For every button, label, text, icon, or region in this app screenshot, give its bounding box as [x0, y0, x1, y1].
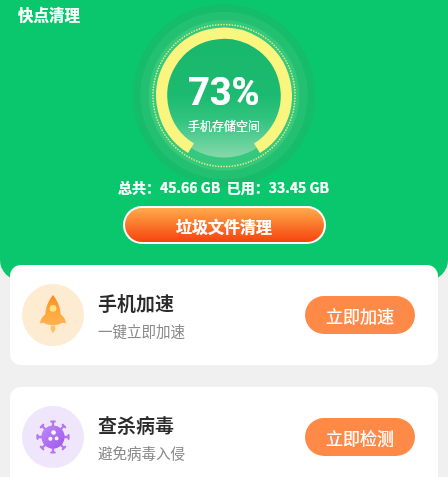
staticText: 总共：45.66 GB 已用：33.45 GB — [118, 177, 330, 197]
staticText: 一键立即加速 — [98, 320, 185, 341]
button[interactable]: 查杀病毒 — [10, 387, 438, 477]
staticText: 快点清理 — [18, 3, 81, 25]
staticText: 73% — [188, 70, 260, 115]
staticText: 立即检测 — [326, 425, 394, 450]
button[interactable]: 立即检测 — [305, 418, 415, 456]
staticText: 垃圾文件清理 — [176, 214, 273, 237]
button[interactable]: 立即加速 — [305, 296, 415, 334]
staticText: 立即加速 — [326, 303, 394, 328]
button[interactable]: 手机加速 — [10, 265, 438, 365]
staticText: 查杀病毒 — [98, 411, 175, 439]
staticText: 避免病毒入侵 — [98, 442, 185, 463]
staticText: 手机加速 — [98, 289, 175, 317]
button[interactable]: 垃圾文件清理 — [125, 208, 324, 242]
staticText: 手机存储空间 — [188, 117, 261, 134]
